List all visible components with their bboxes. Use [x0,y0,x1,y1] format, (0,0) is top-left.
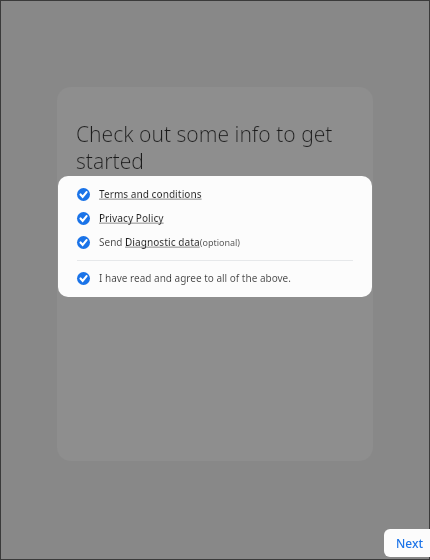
button[interactable]: Agree to all [77,267,353,289]
other: Terms and conditions [77,188,90,201]
staticText: Privacy Policy [99,211,164,225]
button[interactable]: Privacy Policy [77,206,353,230]
staticText: Next [396,535,424,551]
other: Send Diagnostic data, optional [77,236,90,249]
staticText: I have read and agree to all of the abov… [99,271,291,285]
staticText: Check out some info to get started [76,120,354,175]
button[interactable]: Terms and conditions [77,182,353,206]
other: Privacy Policy [77,212,90,225]
staticText: Send Diagnostic data(optional) [99,235,241,249]
other: Agree to all [77,272,90,285]
button[interactable]: Send Diagnostic data, optional [77,230,353,254]
staticText: Terms and conditions [99,187,202,201]
button[interactable]: Next [384,529,430,557]
